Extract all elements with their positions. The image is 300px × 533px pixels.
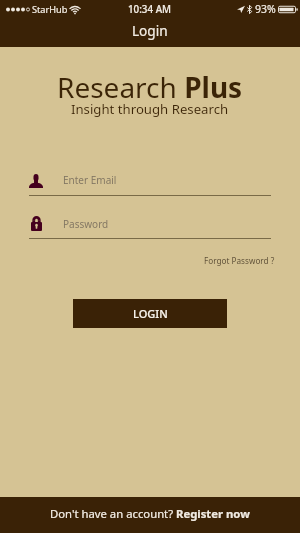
staticText: Login xyxy=(132,21,168,40)
button[interactable]: Don't have an account? Register now xyxy=(0,497,300,533)
button[interactable]: Enter Email xyxy=(29,168,271,196)
staticText: 10:34 AM xyxy=(128,3,172,16)
staticText: 93% xyxy=(255,2,276,16)
staticText: Password xyxy=(63,217,109,231)
button[interactable]: Password xyxy=(29,211,271,239)
staticText: Forgot Password ? xyxy=(204,255,275,266)
button[interactable]: LOGIN xyxy=(73,299,227,328)
staticText: Don't have an account? Register now xyxy=(50,506,250,521)
staticText: Insight through Research xyxy=(71,100,229,118)
staticText: Research Plus xyxy=(57,68,243,106)
staticText: LOGIN xyxy=(133,306,168,321)
staticText: StarHub xyxy=(32,3,68,16)
staticText: Enter Email xyxy=(63,173,117,187)
button[interactable]: Forgot Password ? xyxy=(202,250,276,270)
